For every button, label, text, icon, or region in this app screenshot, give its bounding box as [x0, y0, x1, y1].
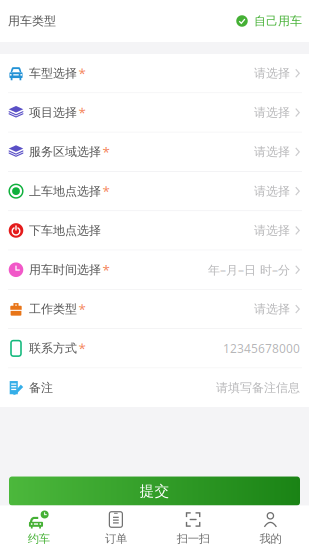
staticText: 请选择: [254, 184, 290, 199]
staticText: *: [102, 261, 109, 279]
button[interactable]: 服务区域选择: [0, 133, 309, 171]
staticText: 约车: [28, 531, 50, 546]
staticText: *: [78, 103, 85, 122]
staticText: *: [78, 300, 85, 318]
staticText: 请选择: [254, 223, 290, 238]
button[interactable]: 用车时间选择: [0, 250, 309, 289]
button[interactable]: 上车地点选择: [0, 172, 309, 210]
staticText: 请选择: [254, 105, 290, 120]
staticText: 车型选择: [29, 66, 77, 81]
staticText: 请选择: [254, 301, 290, 317]
staticText: 自己用车: [254, 13, 302, 28]
button[interactable]: 项目选择: [0, 93, 309, 132]
staticText: 年–月–日 时–分: [208, 262, 290, 278]
button[interactable]: 工作类型: [0, 290, 309, 328]
staticText: 上车地点选择: [29, 184, 101, 199]
staticText: 下车地点选择: [29, 223, 101, 238]
staticText: 用车类型: [8, 13, 56, 28]
button[interactable]: 自己用车: [228, 0, 309, 42]
button[interactable]: 车型选择: [0, 54, 309, 92]
staticText: 服务区域选择: [29, 144, 101, 159]
staticText: 请选择: [254, 66, 290, 81]
button[interactable]: 我的: [232, 505, 309, 550]
staticText: *: [102, 182, 109, 200]
button[interactable]: 下车地点选择: [0, 211, 309, 250]
staticText: 12345678000: [223, 340, 300, 356]
button[interactable]: 订单: [77, 505, 154, 550]
staticText: 订单: [105, 531, 127, 546]
button[interactable]: 提交: [9, 476, 300, 505]
staticText: 工作类型: [29, 301, 77, 317]
staticText: 备注: [29, 380, 53, 395]
staticText: 我的: [259, 531, 281, 546]
button[interactable]: 备注: [0, 368, 309, 407]
staticText: 请选择: [254, 144, 290, 159]
staticText: *: [78, 339, 85, 357]
staticText: 扫一扫: [177, 531, 210, 546]
button[interactable]: 约车: [0, 505, 77, 550]
staticText: 项目选择: [29, 105, 77, 120]
staticText: 联系方式: [29, 341, 77, 356]
staticText: 请填写备注信息: [216, 380, 300, 395]
staticText: *: [78, 64, 85, 82]
button[interactable]: 扫一扫: [154, 505, 232, 550]
staticText: 用车时间选择: [29, 262, 101, 277]
button[interactable]: 联系方式: [0, 329, 309, 368]
staticText: *: [102, 143, 109, 161]
staticText: 提交: [139, 482, 169, 500]
